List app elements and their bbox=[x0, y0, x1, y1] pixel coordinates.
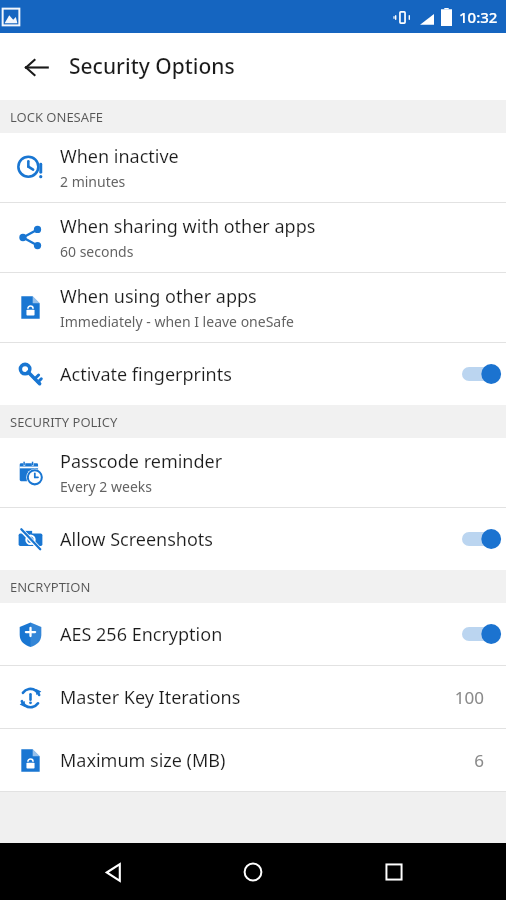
button[interactable]: When using other apps bbox=[0, 273, 506, 342]
button[interactable]: Home bbox=[225, 844, 281, 900]
button[interactable]: Recent apps bbox=[366, 844, 422, 900]
button[interactable]: AES 256 Encryption bbox=[0, 603, 506, 665]
staticText: ENCRYPTION bbox=[10, 578, 91, 596]
staticText: Passcode reminder bbox=[60, 449, 223, 474]
staticText: Security Options bbox=[69, 52, 235, 81]
staticText: 60 seconds bbox=[60, 242, 134, 261]
staticText: Allow Screenshots bbox=[60, 527, 462, 552]
staticText: When inactive bbox=[60, 144, 179, 169]
button[interactable]: Back bbox=[85, 844, 141, 900]
button[interactable]: Back bbox=[12, 43, 60, 91]
staticText: Master Key Iterations bbox=[60, 685, 454, 710]
staticText: LOCK ONESAFE bbox=[10, 108, 104, 126]
staticText: 2 minutes bbox=[60, 172, 126, 191]
staticText: When using other apps bbox=[60, 284, 257, 309]
button[interactable]: When sharing with other apps bbox=[0, 203, 506, 272]
staticText: Immediately - when I leave oneSafe bbox=[60, 312, 294, 331]
staticText: SECURITY POLICY bbox=[10, 413, 118, 431]
button[interactable]: Master Key Iterations bbox=[0, 666, 506, 728]
staticText: When sharing with other apps bbox=[60, 214, 316, 239]
staticText: Maximum size (MB) bbox=[60, 748, 474, 773]
staticText: AES 256 Encryption bbox=[60, 622, 462, 647]
button[interactable]: Passcode reminder bbox=[0, 438, 506, 507]
staticText: Activate fingerprints bbox=[60, 362, 462, 387]
button[interactable]: Allow Screenshots bbox=[0, 508, 506, 570]
staticText: 10:32 bbox=[459, 7, 498, 27]
button[interactable]: When inactive bbox=[0, 133, 506, 202]
button[interactable]: Activate fingerprints bbox=[0, 343, 506, 405]
button[interactable]: Maximum size (MB) bbox=[0, 729, 506, 791]
staticText: 6 bbox=[474, 749, 484, 772]
staticText: 100 bbox=[454, 686, 484, 709]
staticText: Every 2 weeks bbox=[60, 477, 152, 496]
